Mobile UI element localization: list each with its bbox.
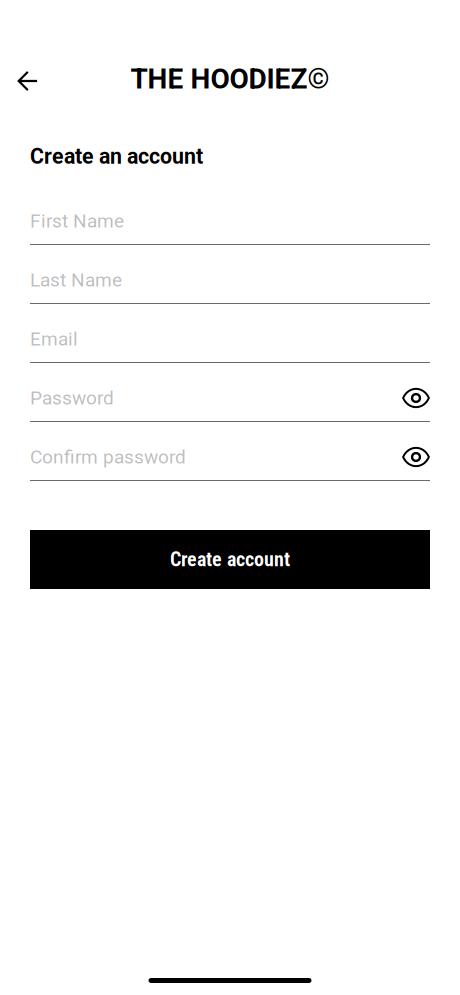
staticText: THE HOODIEZ© — [130, 63, 329, 95]
staticText: Password — [30, 387, 114, 409]
button[interactable]: Show Password — [402, 388, 430, 408]
staticText: Create an account — [30, 144, 203, 169]
staticText: Last Name — [30, 269, 122, 291]
staticText: Confirm password — [30, 446, 186, 468]
staticText: First Name — [30, 210, 124, 232]
button[interactable]: Back — [8, 59, 48, 99]
staticText: Create account — [170, 548, 290, 571]
button[interactable]: Show Confirm password — [402, 447, 430, 467]
staticText: Email — [30, 328, 78, 350]
button[interactable]: Create account — [30, 530, 430, 589]
